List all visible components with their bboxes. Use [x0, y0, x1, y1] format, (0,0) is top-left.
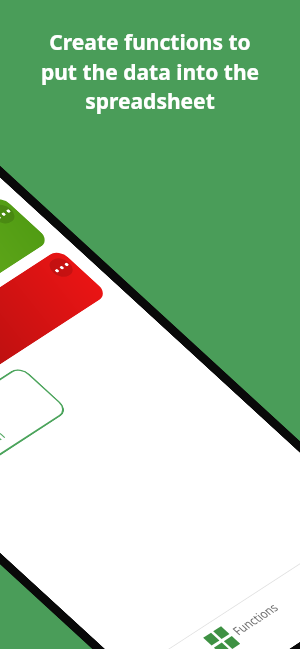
button[interactable]: More options: [42, 250, 80, 285]
staticText: Add function: [0, 411, 12, 493]
button[interactable]: More options: [0, 197, 22, 231]
staticText: Create functions to put the data into th…: [10, 28, 290, 115]
button[interactable]: Functions: [190, 571, 299, 649]
button[interactable]: More options: [0, 192, 117, 492]
staticText: Functions: [226, 589, 285, 649]
button[interactable]: More options: [0, 138, 59, 439]
button[interactable]: Add function: [0, 334, 78, 520]
